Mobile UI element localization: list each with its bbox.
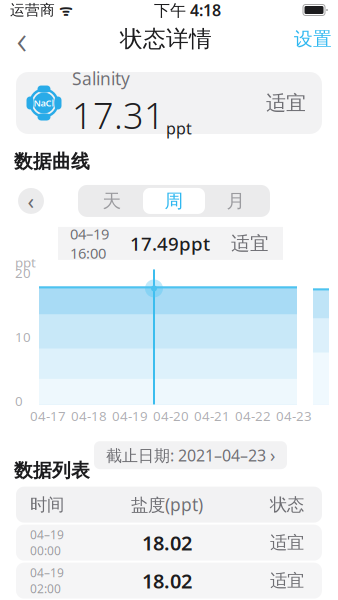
button[interactable]: Previous period — [18, 188, 44, 214]
staticText: › — [270, 444, 275, 467]
staticText: 18.02 — [142, 529, 192, 556]
button[interactable]: 04–19 — [16, 563, 322, 599]
button[interactable]: 截止日期: 2021–04–23 — [94, 441, 287, 469]
staticText: 适宜 — [266, 91, 306, 115]
button[interactable]: 月 — [205, 188, 267, 214]
staticText: 天 — [102, 189, 121, 212]
staticText: 16:00 — [70, 243, 106, 263]
staticText: 04-20 — [153, 407, 189, 425]
staticText: 04–19 — [30, 527, 64, 543]
staticText: 状态 — [270, 494, 304, 515]
staticText: 04-23 — [276, 407, 312, 425]
staticText: 数据曲线 — [14, 150, 90, 173]
button[interactable]: 04–19 — [16, 525, 322, 561]
staticText: 04-19 — [112, 407, 148, 425]
staticText: NaCl — [33, 97, 54, 109]
staticText: 04-17 — [30, 407, 66, 425]
staticText: 适宜 — [231, 232, 269, 255]
button[interactable]: 设置 — [288, 20, 332, 58]
staticText: 04-22 — [235, 407, 271, 425]
staticText: 17.31 — [72, 91, 165, 139]
button[interactable]: Back — [0, 20, 44, 58]
staticText: 0 — [15, 392, 23, 410]
staticText: 盐度(ppt) — [131, 493, 203, 516]
staticText: 04–19 — [70, 224, 109, 243]
staticText: 状态详情 — [120, 25, 212, 53]
staticText: 04-18 — [71, 407, 107, 425]
button[interactable]: 周 — [143, 188, 205, 214]
staticText: 数据列表 — [14, 459, 90, 482]
staticText: 适宜 — [270, 532, 304, 553]
button[interactable]: 天 — [81, 188, 143, 214]
staticText: ‹ — [27, 187, 34, 215]
staticText: 00:00 — [30, 543, 61, 558]
staticText: Salinity — [72, 67, 130, 90]
staticText: 17.49ppt — [130, 231, 210, 256]
staticText: 适宜 — [270, 570, 304, 591]
staticText: 10 — [15, 328, 31, 346]
staticText: ppt — [15, 254, 36, 271]
staticText: 04–19 — [30, 565, 64, 581]
staticText: 02:00 — [30, 581, 61, 596]
staticText: 月 — [226, 189, 245, 212]
staticText: 时间 — [30, 494, 64, 515]
staticText: 18.02 — [142, 567, 192, 594]
staticText: ᯤ — [55, 0, 72, 20]
staticText: 周 — [164, 189, 183, 212]
staticText: ppt — [166, 118, 192, 139]
staticText: 04-21 — [194, 407, 230, 425]
staticText: 截止日期: 2021–04–23 — [106, 444, 266, 466]
staticText: 运营商 — [10, 1, 55, 19]
staticText: 下午 4:18 — [154, 0, 221, 21]
staticText: 20 — [15, 264, 31, 282]
staticText: 设置 — [294, 27, 332, 50]
staticText: ‹ — [16, 12, 27, 65]
